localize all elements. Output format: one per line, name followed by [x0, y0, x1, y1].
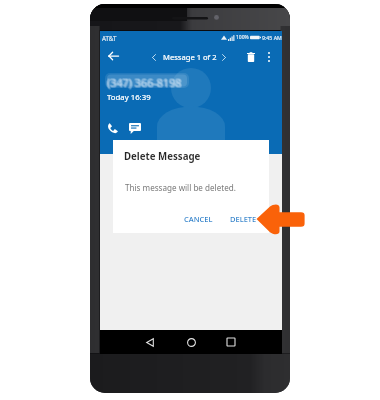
button[interactable]: Message [126, 119, 144, 137]
staticText: Delete Message [124, 150, 201, 163]
staticText: (347) 366-8198 [106, 74, 181, 89]
staticText: (347) 366-8198 [108, 75, 183, 90]
button[interactable]: Back [106, 48, 121, 63]
staticText: (347) 366-8198 [108, 76, 183, 91]
button[interactable]: CANCEL [180, 211, 217, 227]
button[interactable]: DELETE [226, 211, 261, 227]
button[interactable]: Back [143, 335, 157, 349]
button[interactable]: Call [103, 119, 121, 137]
staticText: CANCEL [184, 214, 213, 224]
staticText: (347) 366-8198 [107, 76, 182, 91]
button[interactable]: Next message [219, 52, 229, 62]
staticText: (347) 366-8198 [106, 75, 181, 90]
staticText: Today 16:39 [107, 92, 151, 103]
staticText: This message will be deleted. [125, 182, 236, 193]
staticText: (347) 366-8198 [107, 75, 182, 90]
button[interactable]: Home [184, 335, 198, 349]
button[interactable]: More options [262, 50, 276, 64]
staticText: 9:45 AM [262, 34, 282, 41]
staticText: AT&T [102, 34, 117, 42]
staticText: (347) 366-8198 [107, 74, 182, 89]
staticText: 100% [236, 34, 249, 41]
button[interactable]: Recents [224, 335, 238, 349]
staticText: Message 1 of 2 [163, 52, 217, 62]
button[interactable]: Previous message [149, 52, 159, 62]
button[interactable]: Delete [243, 49, 258, 64]
staticText: DELETE [230, 214, 257, 224]
